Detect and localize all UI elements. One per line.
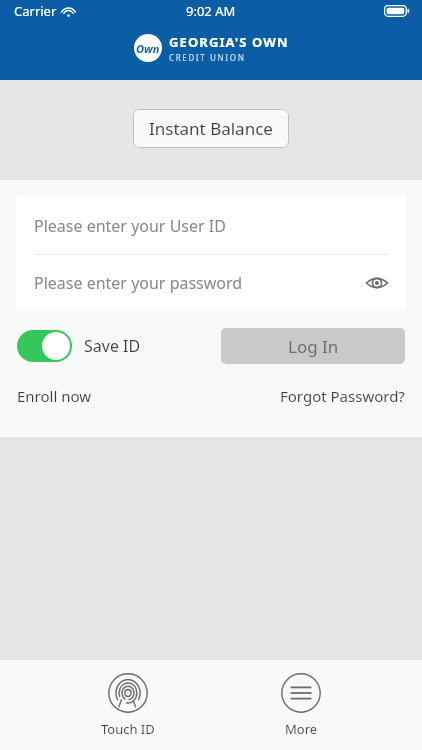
- staticText: CREDIT UNION: [169, 52, 246, 63]
- button[interactable]: Please enter your User ID: [16, 197, 406, 254]
- button[interactable]: Instant Balance: [133, 109, 289, 148]
- staticText: Own: [136, 41, 160, 56]
- button[interactable]: Touch ID: [75, 667, 181, 744]
- staticText: Save ID: [84, 335, 141, 357]
- staticText: Touch ID: [101, 720, 155, 738]
- staticText: Please enter your User ID: [34, 215, 226, 237]
- button[interactable]: More: [255, 667, 347, 744]
- staticText: Please enter your password: [34, 272, 243, 294]
- button[interactable]: Enroll now: [17, 386, 92, 406]
- staticText: 9:02 AM: [186, 2, 236, 20]
- staticText: GEORGIA'S OWN: [169, 33, 289, 51]
- staticText: Instant Balance: [149, 117, 273, 140]
- staticText: Log In: [288, 335, 339, 358]
- staticText: More: [285, 720, 318, 738]
- button[interactable]: Show password: [360, 266, 394, 300]
- staticText: Enroll now: [17, 386, 92, 406]
- button[interactable]: Log In: [221, 328, 405, 364]
- staticText: Carrier: [14, 2, 57, 20]
- button[interactable]: Please enter your password: [16, 255, 406, 311]
- button[interactable]: Save ID: [17, 330, 141, 362]
- staticText: Forgot Password?: [280, 386, 405, 406]
- button[interactable]: Forgot Password?: [280, 386, 405, 406]
